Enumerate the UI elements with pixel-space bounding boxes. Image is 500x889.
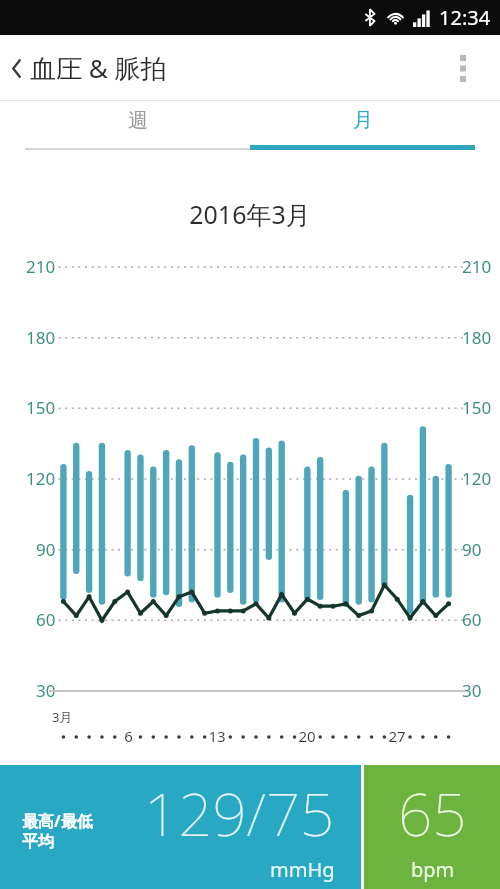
staticText: 210 bbox=[462, 255, 492, 278]
staticText: 210 bbox=[26, 255, 56, 278]
staticText: 60 bbox=[462, 608, 482, 631]
staticText: 120 bbox=[26, 467, 56, 490]
staticText: 最高/最低 bbox=[22, 810, 93, 832]
staticText: 30 bbox=[36, 679, 56, 702]
staticText: 週 bbox=[128, 108, 148, 130]
staticText: 60 bbox=[36, 608, 56, 631]
staticText: 90 bbox=[36, 538, 56, 561]
staticText: 150 bbox=[462, 396, 492, 419]
staticText: 6 bbox=[124, 726, 133, 746]
staticText: 月 bbox=[353, 108, 373, 130]
staticText: 180 bbox=[26, 326, 56, 349]
button[interactable]: 月 bbox=[250, 108, 475, 168]
button[interactable]: 週 bbox=[25, 108, 250, 168]
button[interactable]: Back bbox=[0, 44, 175, 92]
staticText: 20 bbox=[298, 726, 316, 746]
staticText: 血圧 & 脈拍 bbox=[30, 50, 167, 86]
staticText: 3月 bbox=[52, 708, 73, 726]
other: Back bbox=[10, 56, 23, 81]
staticText: 平均 bbox=[22, 832, 54, 852]
staticText: 90 bbox=[462, 538, 482, 561]
staticText: mmHg bbox=[270, 856, 335, 883]
staticText: 150 bbox=[26, 396, 56, 419]
staticText: 65 bbox=[398, 772, 467, 854]
staticText: 2016年3月 bbox=[189, 197, 311, 231]
button[interactable]: 最高/最低 bbox=[0, 765, 361, 889]
button[interactable]: 65 bbox=[364, 765, 500, 889]
staticText: 27 bbox=[388, 726, 406, 746]
staticText: bpm bbox=[411, 856, 455, 883]
staticText: 129/75 bbox=[144, 772, 335, 854]
staticText: 30 bbox=[462, 679, 482, 702]
staticText: 12:34 bbox=[439, 4, 491, 31]
button[interactable]: More options bbox=[442, 47, 484, 89]
staticText: 13 bbox=[208, 726, 226, 746]
staticText: 120 bbox=[462, 467, 492, 490]
staticText: 180 bbox=[462, 326, 492, 349]
